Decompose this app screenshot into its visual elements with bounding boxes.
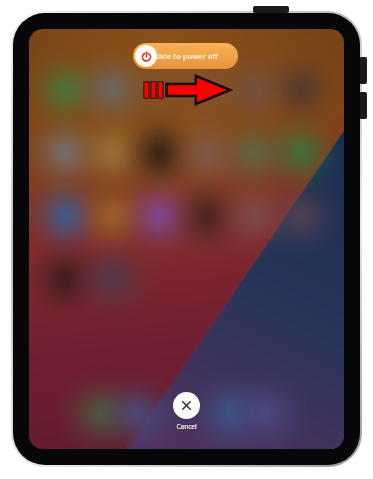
button[interactable]: Cancel (173, 392, 200, 431)
staticText: Cancel (176, 422, 197, 431)
button[interactable]: Power off (135, 45, 157, 67)
staticText: slide to power off (154, 51, 218, 61)
other: Cancel (173, 392, 200, 419)
button[interactable]: slide to power off (133, 43, 238, 69)
